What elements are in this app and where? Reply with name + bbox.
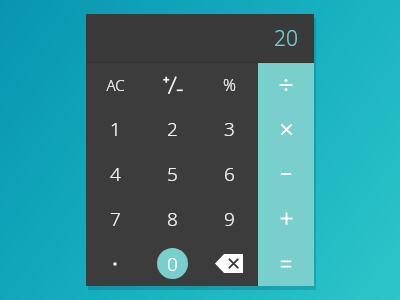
button[interactable]: % xyxy=(201,63,258,107)
other: Minus xyxy=(277,169,295,179)
button[interactable]: 5 xyxy=(144,151,201,196)
button[interactable]: Minus xyxy=(258,151,314,196)
other: Multiply xyxy=(279,122,294,137)
button[interactable]: Plus minus sign toggle xyxy=(144,63,201,107)
staticText: 5 xyxy=(167,161,178,187)
staticText: 8 xyxy=(167,206,178,232)
other: Plus xyxy=(278,210,295,227)
button[interactable]: AC xyxy=(86,63,144,107)
staticText: 1 xyxy=(110,116,121,142)
button[interactable]: 8 xyxy=(144,196,201,241)
other: Divide xyxy=(277,76,295,94)
button[interactable]: 1 xyxy=(86,107,144,151)
button[interactable]: 4 xyxy=(86,151,144,196)
button[interactable]: Multiply xyxy=(258,107,314,151)
button[interactable]: Decimal point xyxy=(86,241,144,286)
button[interactable]: 7 xyxy=(86,196,144,241)
button[interactable]: Equals xyxy=(258,241,314,286)
button[interactable]: Plus xyxy=(258,196,314,241)
staticText: 0 xyxy=(167,251,178,277)
button[interactable]: 0 xyxy=(144,241,201,286)
staticText: 6 xyxy=(224,161,235,187)
button[interactable]: 6 xyxy=(201,151,258,196)
staticText: 7 xyxy=(110,206,121,232)
staticText: 2 xyxy=(167,116,178,142)
button[interactable]: Delete xyxy=(201,241,258,286)
button[interactable]: Divide xyxy=(258,63,314,107)
button[interactable]: 3 xyxy=(201,107,258,151)
staticText: AC xyxy=(106,75,125,95)
button[interactable]: 2 xyxy=(144,107,201,151)
button[interactable]: 9 xyxy=(201,196,258,241)
staticText: 4 xyxy=(110,161,121,187)
staticText: % xyxy=(223,74,236,96)
staticText: 3 xyxy=(224,116,235,142)
staticText: 9 xyxy=(224,206,235,232)
other: Equals xyxy=(278,259,294,269)
staticText: 20 xyxy=(274,24,298,53)
